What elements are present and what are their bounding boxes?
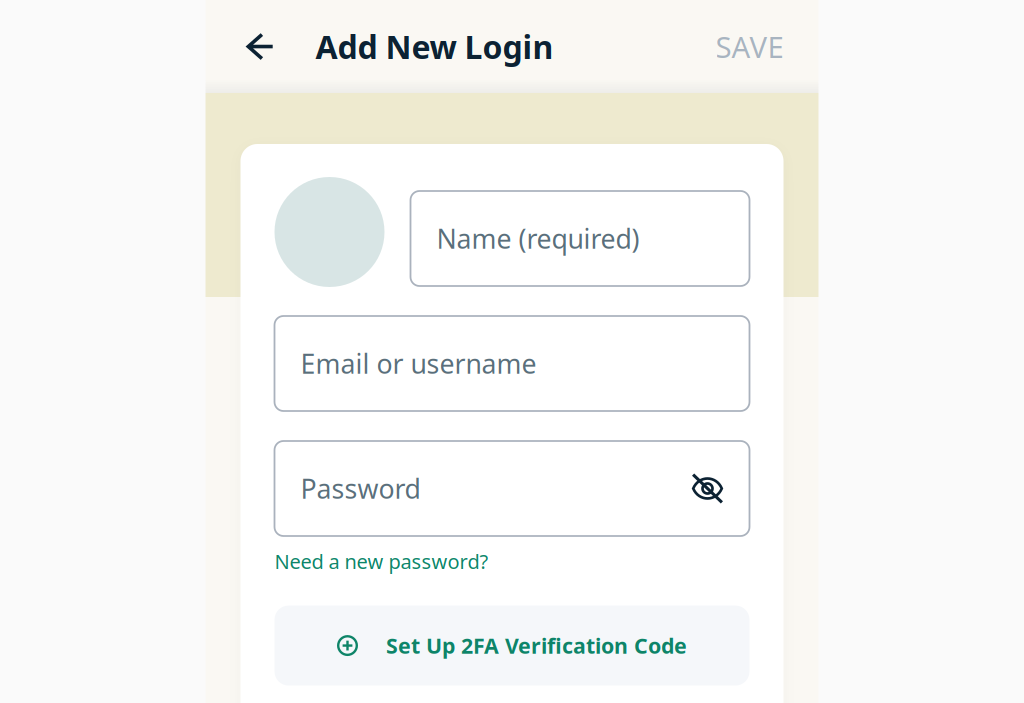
button[interactable]: Email or username: [274, 316, 749, 411]
button[interactable]: Need a new password?: [274, 536, 488, 579]
button[interactable]: Name (required): [410, 191, 749, 286]
button[interactable]: Set Up 2FA Verification Code: [274, 606, 749, 686]
button[interactable]: Password: [274, 441, 749, 536]
button[interactable]: Back: [205, 0, 315, 93]
button[interactable]: SAVE: [715, 0, 818, 93]
staticText: Email or username: [300, 346, 536, 381]
staticText: Set Up 2FA Verification Code: [386, 631, 687, 660]
staticText: Name (required): [436, 221, 639, 256]
staticText: Need a new password?: [274, 548, 488, 575]
staticText: SAVE: [715, 27, 783, 66]
staticText: Add New Login: [315, 25, 553, 68]
staticText: Password: [300, 471, 420, 506]
button[interactable]: Show password: [691, 473, 723, 504]
